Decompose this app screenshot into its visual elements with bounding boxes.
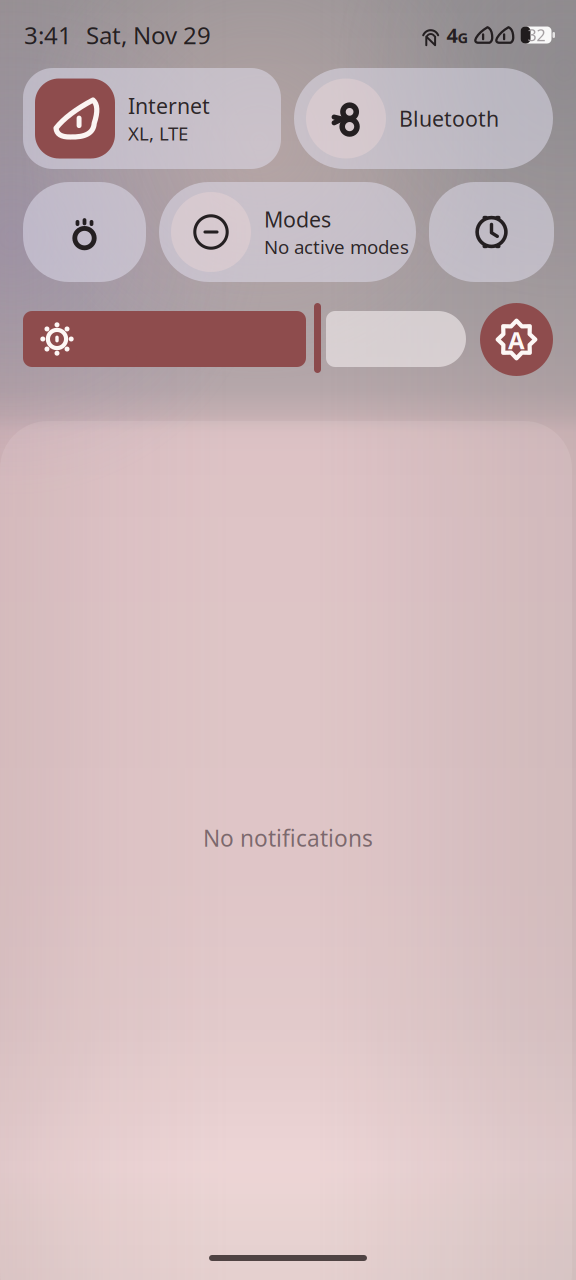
staticText: G [457, 28, 468, 47]
button[interactable]: Brightness [23, 311, 306, 367]
button[interactable]: Internet [23, 68, 281, 169]
staticText: 32 [527, 24, 545, 46]
staticText: No active modes [264, 234, 409, 259]
staticText: Modes [264, 205, 331, 233]
button[interactable]: Bluetooth [294, 68, 553, 169]
staticText: XL, LTE [128, 121, 188, 146]
staticText: Sat, Nov 29 [86, 19, 211, 51]
staticText: Bluetooth [399, 104, 499, 133]
staticText: Internet [128, 91, 210, 120]
button[interactable]: Flashlight [23, 182, 146, 282]
staticText: 3:41 [24, 19, 72, 51]
button[interactable]: Auto brightness [480, 303, 553, 376]
button[interactable]: Modes [159, 182, 416, 282]
button[interactable]: Alarm [429, 182, 554, 282]
staticText: A [508, 324, 525, 356]
staticText: No notifications [203, 823, 373, 853]
staticText: 4 [446, 22, 457, 48]
